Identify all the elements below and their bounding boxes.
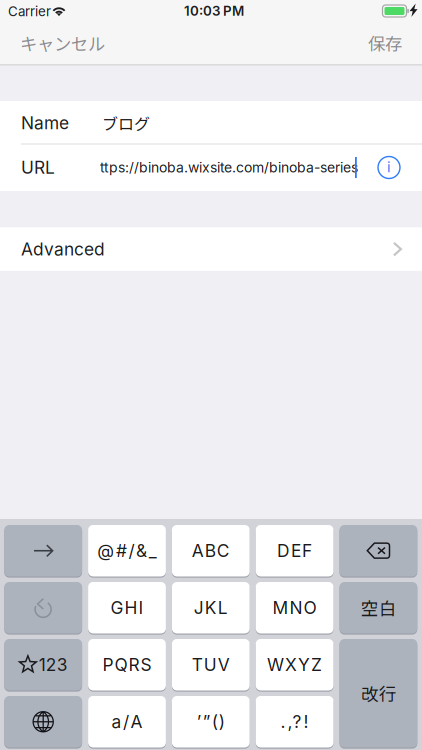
staticText: TUV (192, 654, 230, 675)
staticText: ’”() (197, 711, 225, 732)
staticText: Name (21, 112, 69, 133)
button[interactable]: a/A (88, 696, 166, 747)
button[interactable]: TUV (172, 639, 250, 690)
staticText: PQRS (102, 654, 151, 675)
staticText: 改行 (361, 681, 396, 706)
button[interactable]: Advanced (0, 227, 422, 271)
staticText: Advanced (21, 239, 105, 260)
staticText: ttps://binoba.wixsite.com/binoba-series (100, 159, 358, 176)
button[interactable]: Undo (4, 582, 82, 633)
staticText: 保存 (368, 30, 402, 56)
staticText: Carrier (8, 3, 51, 19)
staticText: 空白 (361, 595, 396, 620)
staticText: MNO (273, 597, 317, 618)
button[interactable]: キャンセル (20, 29, 116, 57)
staticText: JKL (194, 597, 228, 618)
button[interactable]: Next keyboard (4, 696, 82, 747)
button[interactable]: 123 (4, 639, 82, 690)
staticText: 10:03 PM (184, 3, 244, 19)
staticText: @#/&_ (97, 540, 157, 561)
button[interactable]: .,?! (256, 696, 333, 747)
staticText: キャンセル (20, 30, 105, 56)
staticText: GHI (110, 597, 143, 618)
button[interactable]: ABC (172, 525, 250, 576)
button[interactable]: JKL (172, 582, 250, 633)
staticText: a/A (111, 711, 143, 732)
button[interactable]: GHI (88, 582, 166, 633)
button[interactable]: 改行 (339, 639, 417, 747)
staticText: .,?! (281, 711, 309, 732)
button[interactable]: More info (377, 155, 401, 179)
staticText: URL (21, 157, 55, 178)
staticText: ABC (192, 540, 230, 561)
button[interactable]: PQRS (88, 639, 166, 690)
staticText: ブログ (102, 111, 150, 135)
button[interactable]: MNO (256, 582, 333, 633)
button[interactable]: WXYZ (256, 639, 333, 690)
button[interactable]: @#/&_ (88, 525, 166, 576)
staticText: 123 (39, 654, 68, 675)
staticText: DEF (277, 540, 312, 561)
button[interactable]: 保存 (367, 29, 402, 57)
button[interactable]: Next field (4, 525, 82, 576)
staticText: WXYZ (267, 654, 322, 675)
button[interactable]: 空白 (339, 582, 417, 633)
button[interactable]: ’”() (172, 696, 250, 747)
button[interactable]: Delete (339, 525, 417, 576)
button[interactable]: DEF (256, 525, 333, 576)
staticText: i (387, 158, 391, 176)
